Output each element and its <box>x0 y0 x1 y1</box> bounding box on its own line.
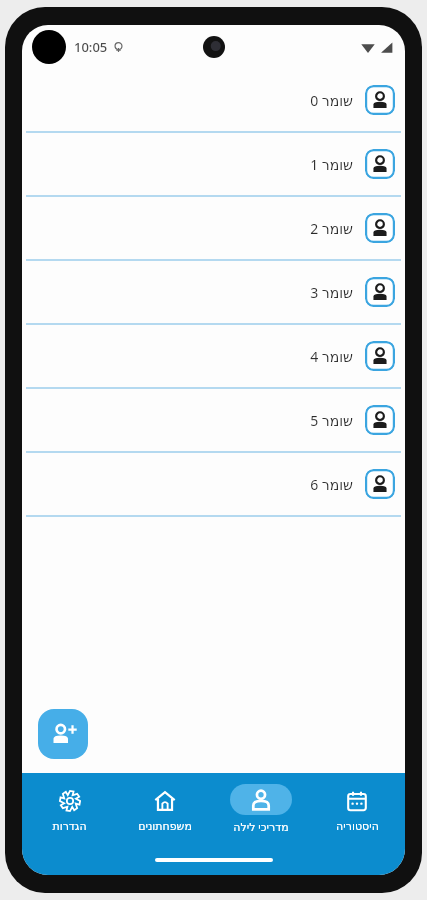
staticText: שומר 3 <box>310 283 353 302</box>
button[interactable]: שומר 2 <box>22 197 405 259</box>
staticText: שומר 1 <box>310 155 353 174</box>
button[interactable]: שומר 4 <box>22 325 405 387</box>
button[interactable]: שומר 5 <box>22 389 405 451</box>
staticText: 10:05 <box>74 38 108 56</box>
staticText: היסטוריה <box>336 820 379 833</box>
staticText: שומר 6 <box>310 475 353 494</box>
button[interactable]: שומר 6 <box>22 453 405 515</box>
staticText: הגדרות <box>52 820 87 833</box>
button[interactable]: שומר 0 <box>22 69 405 131</box>
button[interactable]: שומר 1 <box>22 133 405 195</box>
staticText: מדריכי לילה <box>233 819 289 834</box>
staticText: שומר 5 <box>310 411 353 430</box>
button[interactable]: משפחתונים <box>117 773 213 845</box>
staticText: שומר 2 <box>310 219 353 238</box>
button[interactable]: היסטוריה <box>309 773 405 845</box>
button[interactable]: מדריכי לילה <box>213 773 309 845</box>
button[interactable]: הגדרות <box>22 773 117 845</box>
staticText: שומר 0 <box>310 91 353 110</box>
button[interactable]: הוסף שומר <box>38 709 88 759</box>
button[interactable]: שומר 3 <box>22 261 405 323</box>
staticText: שומר 4 <box>310 347 353 366</box>
staticText: משפחתונים <box>138 820 192 833</box>
